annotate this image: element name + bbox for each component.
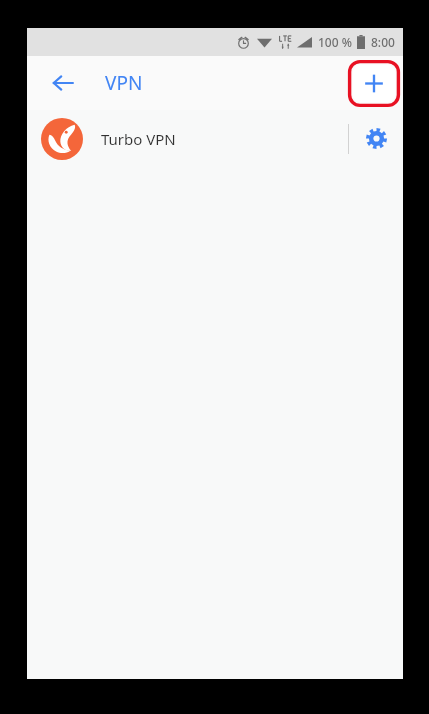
button[interactable]: Back bbox=[41, 61, 85, 105]
button[interactable]: Settings bbox=[349, 110, 403, 167]
staticText: 8:00 bbox=[371, 34, 395, 50]
staticText: VPN bbox=[105, 70, 143, 96]
button[interactable]: Add VPN profile bbox=[348, 60, 400, 107]
staticText: 100 % bbox=[318, 34, 352, 50]
button[interactable]: Turbo VPN bbox=[27, 110, 403, 167]
staticText: Turbo VPN bbox=[101, 129, 176, 149]
